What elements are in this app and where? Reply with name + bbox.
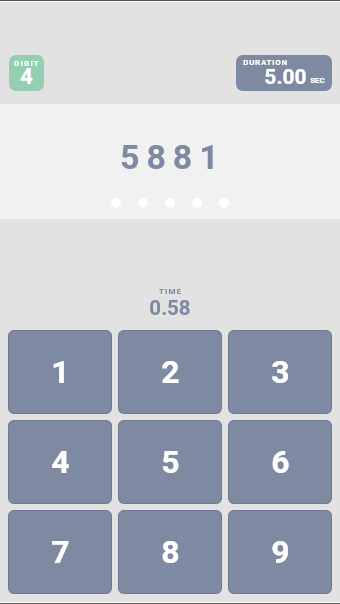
staticText: 1 [51,353,70,391]
button[interactable]: DIGIT [9,55,44,91]
button[interactable]: 8 [118,510,222,594]
button[interactable]: 4 [8,420,112,504]
button[interactable]: 3 [228,330,332,414]
staticText: SEC [310,76,325,85]
staticText: 6 [271,443,290,481]
staticText: DIGIT [14,59,40,68]
staticText: 8 [161,533,180,571]
button[interactable]: DURATION [236,55,332,91]
staticText: 4 [51,443,70,481]
button[interactable]: 9 [228,510,332,594]
button[interactable]: 7 [8,510,112,594]
staticText: 9 [271,533,290,571]
staticText: 7 [51,533,70,571]
staticText: 5 [161,443,180,481]
staticText: TIME [159,287,182,296]
button[interactable]: 6 [228,420,332,504]
staticText: 5 8 8 1 [120,137,218,177]
button[interactable]: 5 [118,420,222,504]
button[interactable]: 2 [118,330,222,414]
staticText: 0.58 [149,296,191,320]
staticText: 4 [20,64,33,90]
button[interactable]: 1 [8,330,112,414]
staticText: 5.00 [264,65,307,90]
staticText: 3 [271,353,290,391]
staticText: 2 [161,353,180,391]
staticText: DURATION [243,58,288,67]
